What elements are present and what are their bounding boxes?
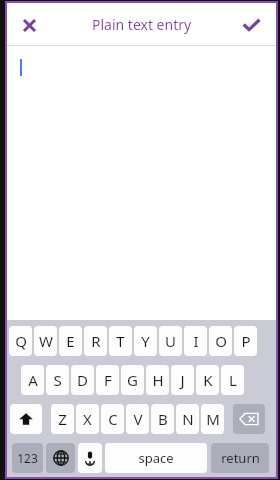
staticText: X [83, 409, 92, 429]
button[interactable]: S [46, 365, 69, 395]
button[interactable]: F [96, 365, 119, 395]
staticText: C [108, 409, 118, 429]
staticText: U [165, 331, 176, 351]
button[interactable]: V [126, 404, 149, 434]
staticText: L [229, 370, 237, 390]
staticText: B [158, 409, 168, 429]
staticText: E [66, 331, 75, 351]
staticText: W [39, 331, 53, 351]
button[interactable]: Z [51, 404, 74, 434]
staticText: K [203, 370, 213, 390]
button[interactable]: O [209, 326, 232, 356]
staticText: V [133, 409, 143, 429]
staticText: space [138, 449, 174, 467]
button[interactable]: G [121, 365, 144, 395]
button[interactable]: U [159, 326, 182, 356]
staticText: Z [58, 409, 67, 429]
staticText: G [127, 370, 138, 390]
staticText: O [215, 331, 227, 351]
staticText: Plain text entry [92, 15, 192, 34]
button[interactable]: return [211, 443, 269, 473]
staticText: 123 [17, 450, 38, 466]
staticText: Y [141, 331, 150, 351]
staticText: I [193, 331, 199, 351]
staticText: Q [15, 331, 27, 351]
staticText: M [206, 409, 220, 429]
button[interactable] [7, 46, 276, 320]
button[interactable]: B [151, 404, 174, 434]
staticText: N [182, 409, 194, 429]
button[interactable]: A [21, 365, 44, 395]
button[interactable]: Change keyboard [46, 443, 75, 473]
button[interactable]: C [101, 404, 124, 434]
button[interactable]: space [105, 443, 207, 473]
button[interactable]: W [34, 326, 57, 356]
button[interactable]: Voice input [78, 443, 102, 473]
staticText: F [104, 370, 112, 390]
button[interactable]: E [59, 326, 82, 356]
staticText: A [28, 370, 38, 390]
staticText: R [91, 331, 101, 351]
button[interactable]: Confirm [236, 10, 266, 40]
button[interactable]: L [221, 365, 244, 395]
button[interactable]: K [196, 365, 219, 395]
button[interactable]: J [171, 365, 194, 395]
button[interactable]: N [176, 404, 199, 434]
staticText: J [180, 370, 185, 390]
staticText: T [116, 331, 125, 351]
button[interactable]: Y [134, 326, 157, 356]
button[interactable]: Q [9, 326, 32, 356]
button[interactable]: D [71, 365, 94, 395]
staticText: H [152, 370, 164, 390]
button[interactable]: X [76, 404, 99, 434]
staticText: return [221, 449, 260, 467]
button[interactable]: 123 [12, 443, 43, 473]
button[interactable]: Shift [10, 404, 42, 434]
staticText: S [53, 370, 62, 390]
staticText: P [241, 331, 251, 351]
button[interactable]: Backspace [233, 404, 265, 434]
button[interactable]: T [109, 326, 132, 356]
button[interactable]: Close [13, 9, 45, 41]
button[interactable]: P [234, 326, 257, 356]
staticText: D [77, 370, 88, 390]
button[interactable]: I [184, 326, 207, 356]
button[interactable]: R [84, 326, 107, 356]
button[interactable]: H [146, 365, 169, 395]
button[interactable]: M [201, 404, 224, 434]
